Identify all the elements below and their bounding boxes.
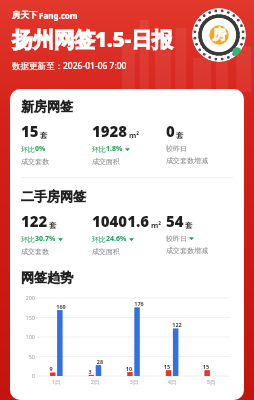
staticText: 套 (49, 221, 57, 230)
staticText: 150 (21, 314, 35, 321)
staticText: 成交套数 (21, 247, 49, 256)
staticText: 成交套数 (21, 157, 49, 166)
staticText: 4日 (165, 378, 179, 386)
staticText: 50 (21, 353, 35, 360)
staticText: 3日 (127, 378, 141, 386)
staticText: 122 (172, 321, 182, 328)
staticText: 房 (212, 26, 226, 44)
button[interactable]: 122 (21, 211, 63, 256)
button[interactable]: 54 (166, 211, 208, 255)
staticText: 24.6% (106, 234, 127, 244)
staticText: 较昨日 (166, 234, 187, 243)
staticText: 54 (166, 211, 184, 231)
staticText: 0 (166, 121, 175, 141)
staticText: 套 (176, 131, 184, 140)
staticText: 1.8% (106, 144, 123, 154)
staticText: 28 (95, 358, 105, 365)
staticText: 环比 (21, 235, 35, 244)
button[interactable]: 15 (21, 121, 49, 166)
button[interactable]: 1928 (92, 121, 140, 166)
staticText: 100 (21, 333, 35, 340)
staticText: 成交面积 (92, 157, 120, 166)
staticText: 15 (201, 363, 211, 370)
staticText: 环比 (92, 235, 106, 244)
staticText: 套 (185, 221, 193, 230)
staticText: 176 (134, 300, 144, 307)
staticText: 套 (40, 131, 48, 140)
staticText: 9 (46, 365, 56, 372)
staticText: m² (129, 130, 140, 140)
staticText: Fang.com (39, 10, 78, 21)
staticText: 5日 (204, 378, 218, 386)
staticText: 扬州网签1.5-日报 (12, 25, 173, 54)
staticText: 成交套数增减 (166, 156, 208, 165)
staticText: 15 (162, 363, 172, 370)
staticText: 环比 (92, 145, 106, 154)
staticText: 200 (21, 294, 35, 301)
staticText: 成交套数增减 (166, 246, 208, 255)
staticText: 房天下 (12, 10, 38, 21)
staticText: 10401.6 (92, 211, 150, 231)
staticText: 15 (21, 121, 39, 141)
staticText: 2日 (88, 378, 102, 386)
staticText: 169 (56, 303, 66, 310)
staticText: 网签趋势 (21, 269, 73, 285)
staticText: 成交面积 (92, 247, 120, 256)
button[interactable]: 房天下官方标识 (192, 8, 246, 62)
staticText: 数据更新至：2026-01-06 7:00 (12, 60, 127, 72)
button[interactable]: 200 (21, 289, 233, 391)
staticText: 1928 (92, 121, 128, 141)
staticText: m² (151, 220, 162, 230)
staticText: 122 (21, 211, 48, 231)
staticText: 新房网签 (21, 98, 73, 114)
staticText: 0 (21, 372, 35, 379)
staticText: 二手房网签 (21, 188, 86, 204)
staticText: 环比 (21, 145, 35, 154)
staticText: 1日 (49, 378, 63, 386)
staticText: 30.7% (35, 234, 56, 244)
staticText: 3 (85, 368, 95, 375)
button[interactable]: 10401.6 (92, 211, 162, 256)
staticText: 较昨日 (166, 144, 187, 153)
staticText: 0% (35, 144, 46, 154)
button[interactable]: 0 (166, 121, 208, 165)
staticText: 10 (124, 365, 134, 372)
